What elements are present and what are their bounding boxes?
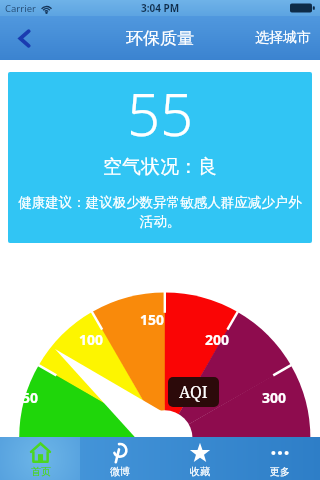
button[interactable]: 首页 (0, 437, 80, 480)
button[interactable]: 选择城市 (246, 16, 320, 60)
button[interactable]: 微博 (80, 437, 160, 480)
staticText: 300 (262, 388, 287, 407)
staticText: 50 (22, 388, 39, 407)
button[interactable]: 更多 (240, 437, 320, 480)
button[interactable]: 55 (8, 72, 312, 243)
staticText: 200 (205, 330, 230, 349)
button[interactable]: Back (0, 16, 48, 60)
staticText: 55 (127, 74, 194, 153)
staticText: 3:04 PM (141, 1, 180, 15)
staticText: 选择城市 (255, 29, 311, 47)
staticText: 150 (140, 310, 165, 329)
staticText: 更多 (270, 465, 290, 478)
button[interactable]: 收藏 (160, 437, 240, 480)
staticText: 100 (79, 330, 104, 349)
staticText: 微博 (110, 465, 130, 478)
staticText: 健康建议：建议极少数异常敏感人群应减少户外活动。 (14, 194, 306, 230)
staticText: 空气状况：良 (103, 155, 217, 179)
staticText: AQI (179, 381, 208, 403)
staticText: 环保质量 (126, 28, 194, 49)
staticText: 首页 (31, 465, 51, 478)
staticText: Carrier (5, 2, 36, 15)
staticText: 收藏 (190, 465, 210, 478)
